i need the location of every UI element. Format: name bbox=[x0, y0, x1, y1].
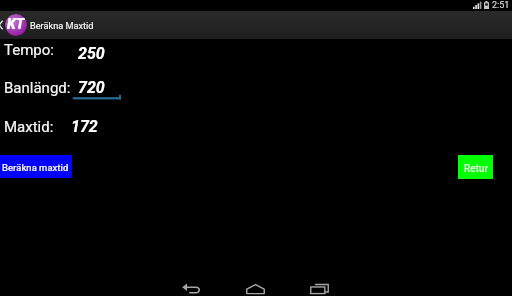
staticText: 172 bbox=[71, 117, 98, 136]
staticText: Banlängd: bbox=[4, 79, 71, 97]
staticText: 2:51 bbox=[492, 0, 510, 11]
staticText: KT bbox=[7, 16, 25, 32]
staticText: Maxtid: bbox=[4, 118, 54, 136]
staticText: 720 bbox=[78, 78, 105, 97]
button[interactable]: Retur bbox=[458, 155, 493, 179]
staticText: Beräkna maxtid bbox=[2, 162, 69, 173]
staticText: Retur bbox=[464, 163, 489, 175]
button[interactable]: Recent apps bbox=[285, 279, 353, 296]
button[interactable]: Home bbox=[221, 280, 289, 296]
staticText: 250 bbox=[78, 44, 105, 63]
staticText: Beräkna Maxtid bbox=[30, 20, 94, 31]
button[interactable]: Beräkna maxtid bbox=[0, 155, 72, 178]
staticText: Tempo: bbox=[4, 41, 54, 59]
button[interactable]: Back bbox=[157, 279, 225, 296]
